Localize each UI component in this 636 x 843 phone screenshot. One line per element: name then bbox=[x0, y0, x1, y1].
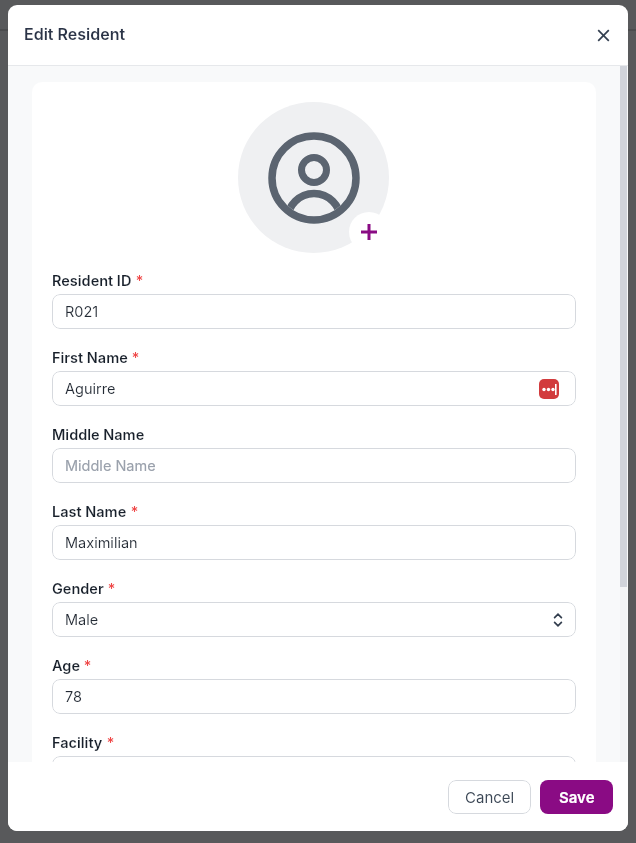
staticText: Male bbox=[65, 611, 553, 629]
button[interactable]: Middle Name bbox=[52, 448, 576, 483]
staticText: Aguirre bbox=[65, 380, 539, 398]
button[interactable]: Maximilian bbox=[52, 525, 576, 560]
button[interactable]: 78 bbox=[52, 679, 576, 714]
staticText: 78 bbox=[65, 688, 576, 706]
staticText: * bbox=[104, 580, 116, 598]
staticText: Gender bbox=[52, 580, 104, 598]
button[interactable]: Save bbox=[540, 780, 613, 814]
staticText: * bbox=[132, 272, 144, 290]
staticText: Last Name bbox=[52, 503, 127, 521]
staticText: Middle Name bbox=[65, 457, 576, 475]
staticText: Resident ID bbox=[52, 272, 132, 290]
button[interactable] bbox=[238, 102, 389, 253]
button[interactable]: R021 bbox=[52, 294, 576, 329]
staticText: * bbox=[127, 503, 139, 521]
staticText: First Name bbox=[52, 349, 128, 367]
staticText: * bbox=[128, 349, 140, 367]
button[interactable] bbox=[589, 21, 617, 49]
staticText: Save bbox=[559, 788, 595, 806]
button[interactable]: Male bbox=[52, 602, 576, 637]
staticText: Facility bbox=[52, 734, 103, 752]
staticText: * bbox=[103, 734, 115, 752]
button[interactable]: Cancel bbox=[448, 780, 531, 814]
staticText: Cancel bbox=[465, 788, 515, 806]
staticText: Edit Resident bbox=[24, 24, 126, 43]
button[interactable] bbox=[349, 212, 389, 252]
button[interactable]: Aguirre bbox=[52, 371, 576, 406]
staticText: R021 bbox=[65, 303, 576, 321]
staticText: * bbox=[80, 657, 92, 675]
button[interactable] bbox=[52, 756, 576, 762]
staticText: Middle Name bbox=[52, 426, 145, 444]
staticText: Maximilian bbox=[65, 534, 576, 552]
staticText: Age bbox=[52, 657, 80, 675]
